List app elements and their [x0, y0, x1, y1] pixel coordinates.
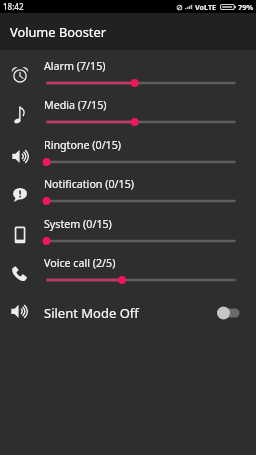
staticText: Notification (0/15)	[44, 177, 134, 192]
staticText: 18:42	[3, 1, 24, 12]
staticText: VoLTE	[195, 2, 217, 12]
staticText: Volume Booster	[10, 23, 106, 40]
staticText: Ringtone (0/15)	[44, 138, 122, 153]
staticText: Alarm (7/15)	[44, 59, 106, 74]
button[interactable]: Voice call (2/5)	[0, 247, 256, 286]
staticText: 79%	[238, 2, 254, 12]
button[interactable]: Media (7/15)	[0, 89, 256, 128]
staticText: Voice call (2/5)	[44, 256, 116, 271]
button[interactable]: Alarm (7/15)	[0, 50, 256, 89]
button[interactable]: Notification (0/15)	[0, 168, 256, 207]
staticText: Silent Mode Off	[44, 304, 139, 322]
staticText: System (0/15)	[44, 217, 112, 232]
button[interactable]: Silent mode toggle	[214, 300, 244, 326]
staticText: Media (7/15)	[44, 98, 107, 113]
button[interactable]: System (0/15)	[0, 208, 256, 247]
button[interactable]: Ringtone (0/15)	[0, 129, 256, 168]
button[interactable]: Silent Mode Off	[0, 291, 256, 335]
